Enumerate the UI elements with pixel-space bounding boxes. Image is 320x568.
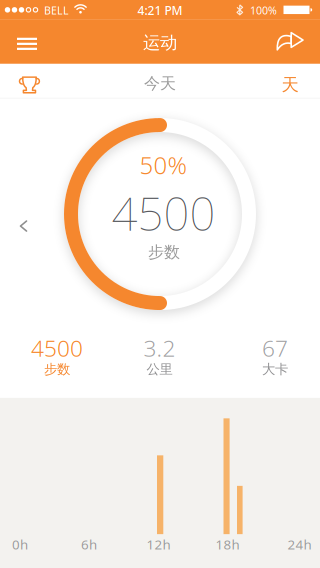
- staticText: 今天: [144, 73, 176, 93]
- staticText: 12h: [146, 535, 170, 553]
- button[interactable]: 67: [230, 330, 320, 398]
- staticText: 18h: [215, 535, 239, 553]
- button[interactable]: Menu: [5, 20, 49, 64]
- staticText: 100%: [250, 3, 277, 17]
- staticText: 步数: [148, 242, 180, 262]
- button[interactable]: 4500: [12, 330, 102, 398]
- staticText: 运动: [143, 32, 177, 53]
- staticText: 4:21 PM: [137, 2, 182, 18]
- staticText: 67: [262, 333, 288, 363]
- staticText: 大卡: [262, 361, 288, 378]
- button[interactable]: 3.2: [114, 330, 204, 398]
- staticText: 0h: [12, 535, 28, 553]
- staticText: 3.2: [143, 333, 175, 363]
- button[interactable]: Achievements: [8, 64, 48, 98]
- staticText: 24h: [287, 535, 311, 553]
- button[interactable]: Day: [270, 68, 310, 102]
- button[interactable]: Previous: [10, 212, 38, 240]
- button[interactable]: Share: [270, 25, 314, 61]
- staticText: 4500: [31, 333, 83, 363]
- staticText: 公里: [146, 361, 172, 378]
- staticText: 6h: [81, 535, 97, 553]
- staticText: 天: [281, 74, 298, 95]
- staticText: 4500: [111, 183, 215, 243]
- staticText: 步数: [44, 361, 70, 378]
- staticText: BELL: [44, 3, 69, 17]
- staticText: 50%: [139, 149, 186, 181]
